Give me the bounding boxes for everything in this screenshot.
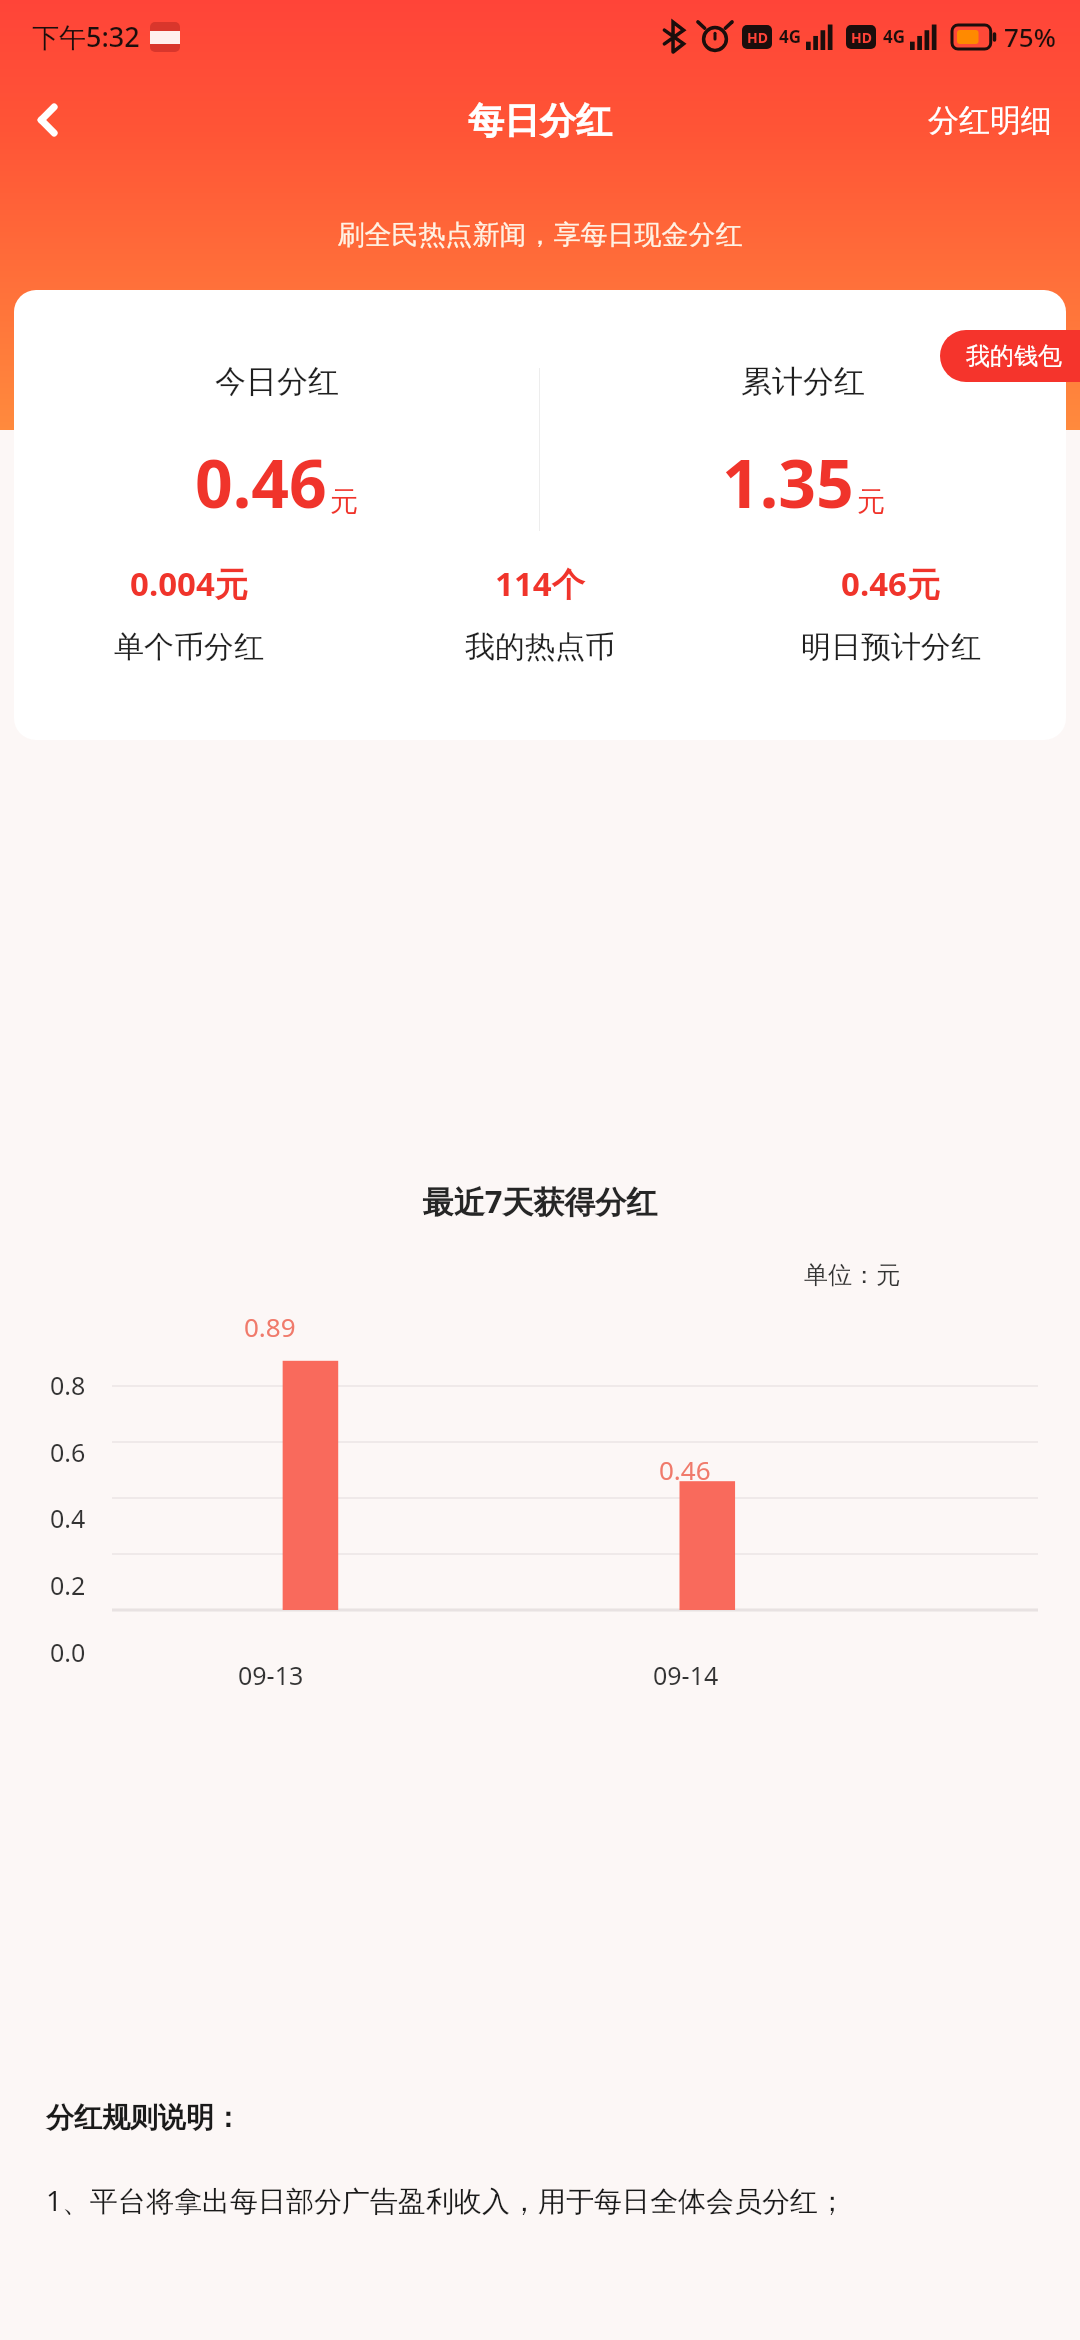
staticText: 0.0 [50, 1635, 86, 1669]
button[interactable]: Back [0, 72, 96, 168]
staticText: 下午5:32 [32, 18, 140, 55]
staticText: 元 [857, 484, 885, 519]
staticText: HD [747, 28, 768, 47]
button[interactable]: 0.46元 [715, 561, 1066, 666]
staticText: 09-13 [238, 1658, 304, 1692]
button[interactable]: 我的钱包 [940, 330, 1080, 382]
staticText: 明日预计分红 [801, 628, 981, 666]
staticText: 0.89 [244, 1309, 296, 1344]
staticText: 0.4 [50, 1501, 86, 1535]
staticText: 0.2 [50, 1568, 86, 1602]
staticText: 0.46元 [841, 561, 940, 606]
button[interactable]: 累计分红 [540, 362, 1066, 527]
staticText: 0.46 [659, 1452, 711, 1487]
staticText: 分红明细 [928, 101, 1052, 140]
staticText: 1.35 [722, 437, 854, 527]
staticText: 我的热点币 [465, 628, 615, 666]
staticText: 今日分红 [215, 362, 339, 401]
button[interactable]: 0.004元 [14, 561, 364, 666]
staticText: 最近7天获得分红 [0, 1180, 1080, 1222]
staticText: 4G [883, 25, 906, 48]
staticText: 元 [330, 484, 358, 519]
staticText: 4G [779, 25, 802, 48]
staticText: 0.004元 [130, 561, 248, 606]
staticText: 单个币分红 [114, 628, 264, 666]
staticText: 1、平台将拿出每日部分广告盈利收入，用于每日全体会员分红； [46, 2181, 847, 2219]
staticText: 单位：元 [0, 1260, 900, 1290]
staticText: 0.6 [50, 1435, 86, 1469]
button[interactable]: 今日分红 [14, 362, 539, 527]
button[interactable]: 分红明细 [900, 85, 1080, 156]
staticText: 每日分红 [468, 98, 612, 143]
staticText: HD [851, 28, 872, 47]
staticText: 刷全民热点新闻，享每日现金分红 [0, 218, 1080, 252]
staticText: 0.46 [195, 437, 327, 527]
staticText: 累计分红 [741, 362, 865, 401]
staticText: 分红规则说明： [46, 2100, 242, 2135]
staticText: 114个 [495, 561, 585, 606]
staticText: 0.8 [50, 1368, 86, 1402]
staticText: 我的钱包 [966, 341, 1062, 371]
button[interactable]: 114个 [364, 561, 715, 666]
staticText: 09-14 [653, 1658, 719, 1692]
staticText: 75% [1004, 19, 1056, 54]
